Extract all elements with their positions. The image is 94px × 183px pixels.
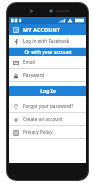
button[interactable]: Create an account — [9, 113, 86, 125]
staticText: MY ACCOUNT — [23, 26, 61, 33]
staticText: Password — [23, 72, 45, 78]
button[interactable]: Email — [9, 56, 86, 68]
button[interactable]: Log In — [9, 86, 86, 96]
staticText: Create an account — [23, 116, 63, 122]
button[interactable]: Log in with Facebook — [9, 35, 86, 47]
button[interactable]: Account menu — [12, 26, 20, 34]
staticText: Log in with Facebook — [23, 38, 70, 44]
staticText: Or with your account — [24, 49, 72, 55]
button[interactable]: Password — [9, 69, 86, 81]
button[interactable]: Privacy Policy — [9, 126, 86, 138]
staticText: Forgot your password? — [23, 103, 74, 109]
button[interactable]: Forgot your password? — [9, 100, 86, 112]
staticText: Email — [23, 59, 36, 65]
staticText: Log In — [40, 88, 56, 95]
staticText: Privacy Policy — [23, 129, 53, 135]
